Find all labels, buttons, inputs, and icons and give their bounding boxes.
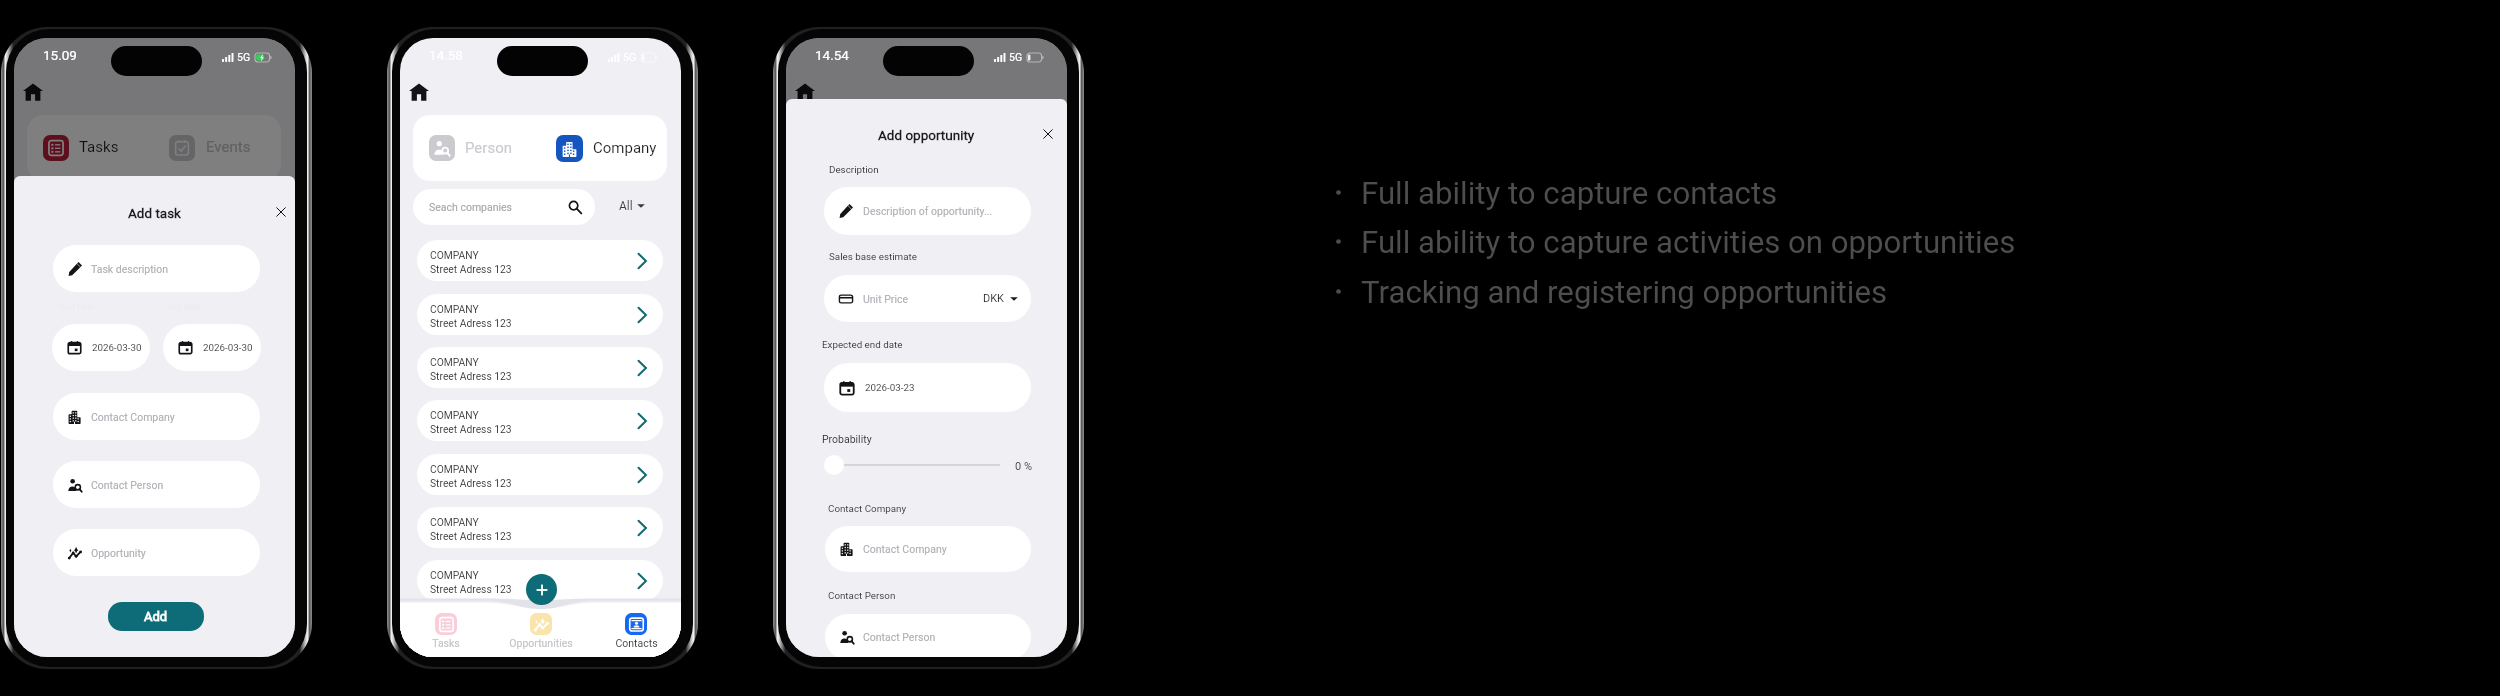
staticText: Contact Company xyxy=(91,411,175,423)
staticText: Tracking and registering opportunities xyxy=(1361,274,1888,311)
staticText: Street Adress 123 xyxy=(430,263,512,275)
staticText: COMPANY xyxy=(430,409,479,421)
button[interactable]: COMPANY xyxy=(417,347,663,388)
staticText: Street Adress 123 xyxy=(430,530,512,542)
button[interactable]: Task description xyxy=(53,245,260,292)
staticText: 14.54 xyxy=(815,47,849,63)
staticText: Add opportunity xyxy=(878,127,975,143)
staticText: DKK xyxy=(983,292,1005,305)
button[interactable]: 2026-03-30 xyxy=(52,324,150,371)
button[interactable]: Contact Company xyxy=(825,526,1031,572)
staticText: Contacts xyxy=(615,637,658,649)
button[interactable]: Unit Price xyxy=(824,275,1031,322)
staticText: COMPANY xyxy=(430,569,479,581)
staticText: Expected end date xyxy=(822,339,903,350)
button[interactable]: 2026-03-30 xyxy=(163,324,261,371)
staticText: COMPANY xyxy=(430,516,479,528)
staticText: COMPANY xyxy=(430,622,479,634)
button[interactable]: Contact Person xyxy=(825,614,1031,657)
button[interactable]: Person xyxy=(413,115,540,181)
button[interactable]: Add xyxy=(526,574,557,605)
button[interactable]: Add xyxy=(108,602,204,631)
staticText: Contact Person xyxy=(863,631,936,643)
staticText: COMPANY xyxy=(430,463,479,475)
staticText: 2026-03-30 xyxy=(92,342,142,353)
staticText: 15.09 xyxy=(43,47,77,63)
staticText: 0 % xyxy=(1015,460,1032,473)
staticText: Task description xyxy=(91,263,168,275)
staticText: Street Adress 123 xyxy=(430,317,512,329)
staticText: Person xyxy=(465,139,512,157)
staticText: Add xyxy=(144,609,168,624)
staticText: Full ability to capture contacts xyxy=(1361,175,1778,212)
staticText: 14.58 xyxy=(429,47,463,63)
staticText: Tasks xyxy=(432,637,460,649)
staticText: Full ability to capture activities on op… xyxy=(1361,224,2016,261)
button[interactable]: 2026-03-23 xyxy=(824,363,1031,412)
button[interactable]: COMPANY xyxy=(417,294,663,335)
staticText: Sales base estimate xyxy=(829,251,917,262)
staticText: COMPANY xyxy=(430,303,479,315)
staticText: Seach companies xyxy=(429,201,513,213)
staticText: Street Adress 123 xyxy=(430,477,512,489)
staticText: Events xyxy=(206,138,251,156)
button[interactable]: Description of opportunity... xyxy=(824,187,1031,235)
staticText: Street Adress 123 xyxy=(430,370,512,382)
staticText: 2026-03-23 xyxy=(865,382,915,393)
button[interactable]: COMPANY xyxy=(417,240,663,281)
button[interactable]: Seach companies xyxy=(413,189,595,225)
staticText: Contact Person xyxy=(91,479,164,491)
button[interactable]: All xyxy=(616,196,648,216)
staticText: 5G xyxy=(623,51,637,63)
staticText: Company xyxy=(593,139,657,157)
staticText: Contact Company xyxy=(863,543,947,555)
staticText: Add task xyxy=(128,205,181,221)
button[interactable]: Opportunity xyxy=(53,529,260,576)
button[interactable]: COMPANY xyxy=(417,454,663,495)
staticText: All xyxy=(619,199,633,213)
staticText: Opportunity xyxy=(91,547,146,559)
staticText: COMPANY xyxy=(430,249,479,261)
staticText: Opportunities xyxy=(509,637,573,649)
staticText: Probability xyxy=(822,433,872,445)
button[interactable]: Contact Person xyxy=(53,461,260,508)
staticText: Tasks xyxy=(79,138,119,156)
button[interactable]: Contacts xyxy=(596,613,676,655)
staticText: 5G xyxy=(237,51,251,63)
staticText: Contact Company xyxy=(828,503,907,514)
staticText: Street Adress 123 xyxy=(430,583,512,595)
staticText: 2026-03-30 xyxy=(203,342,253,353)
button[interactable]: Contact Company xyxy=(53,393,260,440)
button[interactable]: Close xyxy=(273,204,289,220)
staticText: Street Adress 123 xyxy=(430,636,512,648)
staticText: Unit Price xyxy=(863,293,908,305)
button[interactable] xyxy=(824,455,1000,475)
staticText: Description of opportunity... xyxy=(863,205,993,217)
button[interactable]: Close xyxy=(1040,126,1056,142)
button[interactable]: COMPANY xyxy=(417,560,663,601)
staticText: COMPANY xyxy=(430,356,479,368)
staticText: Street Adress 123 xyxy=(430,423,512,435)
button[interactable]: Tasks xyxy=(406,613,486,655)
staticText: 5G xyxy=(1009,51,1023,63)
staticText: Contact Person xyxy=(828,590,896,601)
button[interactable]: Company xyxy=(540,115,667,181)
button[interactable]: COMPANY xyxy=(417,507,663,548)
button[interactable]: Opportunities xyxy=(501,613,581,655)
staticText: Description xyxy=(829,164,879,175)
button[interactable]: COMPANY xyxy=(417,613,663,654)
button[interactable]: COMPANY xyxy=(417,400,663,441)
